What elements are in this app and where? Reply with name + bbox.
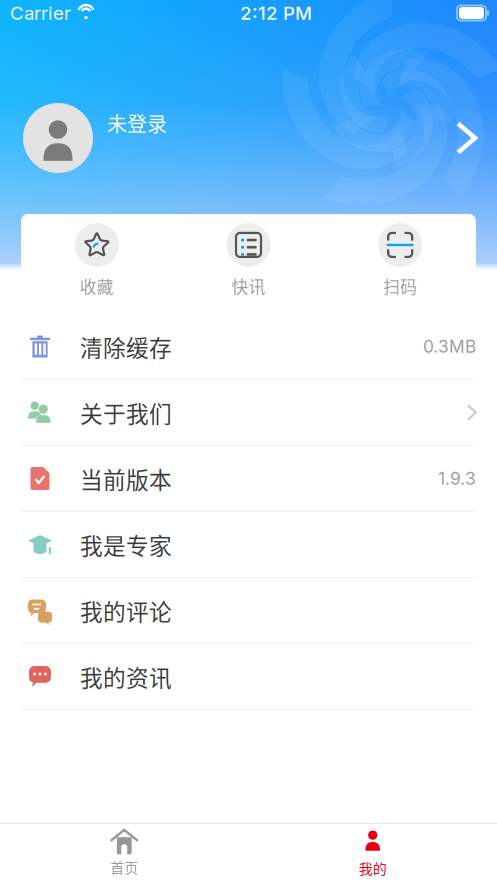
staticText: 清除缓存 (80, 330, 172, 363)
button[interactable]: 我是专家 (0, 512, 497, 578)
button[interactable]: 当前版本 (0, 446, 497, 512)
staticText: 未登录 (107, 108, 167, 137)
button[interactable]: 收藏 (21, 214, 173, 307)
button[interactable]: 扫码 (324, 214, 476, 307)
button[interactable]: 关于我们 (0, 380, 497, 446)
staticText: 1.9.3 (438, 468, 476, 489)
button[interactable]: 我的 (248, 824, 497, 883)
staticText: Carrier (10, 2, 71, 24)
staticText: 快讯 (231, 274, 265, 298)
button[interactable]: 清除缓存 (0, 314, 497, 380)
staticText: 我的资讯 (80, 660, 172, 693)
staticText: 我的评论 (80, 594, 172, 627)
button[interactable]: 我的资讯 (0, 644, 497, 710)
staticText: 2:12 PM (240, 2, 312, 24)
button[interactable]: 首页 (0, 824, 248, 883)
staticText: 我的 (359, 858, 387, 878)
staticText: 关于我们 (80, 396, 172, 429)
staticText: 我是专家 (80, 528, 172, 561)
staticText: 收藏 (80, 274, 114, 298)
button[interactable]: 快讯 (173, 214, 324, 307)
staticText: 0.3MB (423, 336, 476, 357)
button[interactable]: 未登录 (0, 26, 497, 173)
button[interactable]: 我的评论 (0, 578, 497, 644)
staticText: 扫码 (383, 274, 417, 298)
staticText: 首页 (110, 857, 138, 877)
staticText: 当前版本 (80, 462, 172, 495)
